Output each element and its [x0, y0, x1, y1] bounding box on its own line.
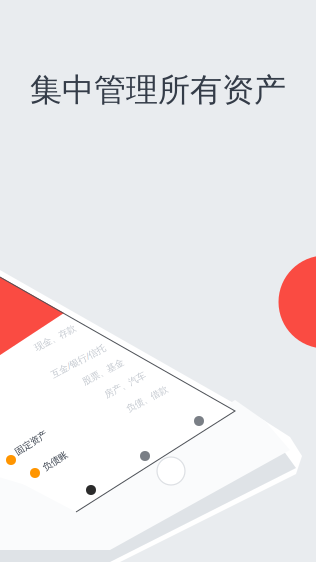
staticText: 集中管理所有资产: [30, 70, 286, 110]
staticText: 负债、借款: [124, 393, 169, 405]
staticText: 股票、基金: [80, 366, 125, 378]
staticText: 房产、汽车: [102, 379, 147, 391]
staticText: 互金/银行/信托: [48, 355, 108, 367]
staticText: 负债账: [41, 455, 68, 467]
staticText: 固定资产: [13, 437, 49, 449]
staticText: 现金、存款: [32, 332, 77, 344]
